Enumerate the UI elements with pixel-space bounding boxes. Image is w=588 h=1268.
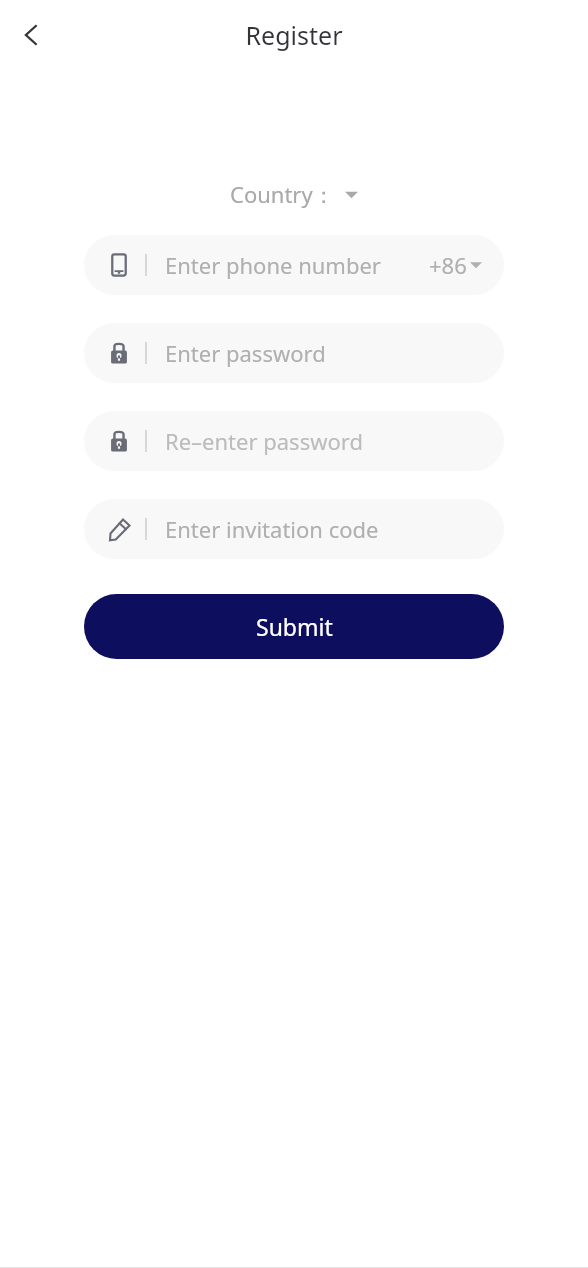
button[interactable]: Enter phone number	[84, 235, 504, 295]
staticText: Enter invitation code	[165, 514, 486, 544]
staticText: Enter phone number	[165, 250, 425, 280]
staticText: +86	[429, 250, 467, 280]
button[interactable]: Enter password	[84, 323, 504, 383]
button[interactable]: Submit	[84, 594, 504, 659]
button[interactable]: Re–enter password	[84, 411, 504, 471]
staticText: Country：	[230, 179, 335, 209]
staticText: Re–enter password	[165, 426, 486, 456]
button[interactable]: Country：	[224, 175, 364, 213]
staticText: Enter password	[165, 338, 486, 368]
staticText: Register	[0, 18, 588, 52]
button[interactable]: +86	[425, 246, 486, 284]
button[interactable]: Enter invitation code	[84, 499, 504, 559]
staticText: Submit	[256, 611, 333, 642]
button[interactable]: Back	[6, 10, 56, 60]
